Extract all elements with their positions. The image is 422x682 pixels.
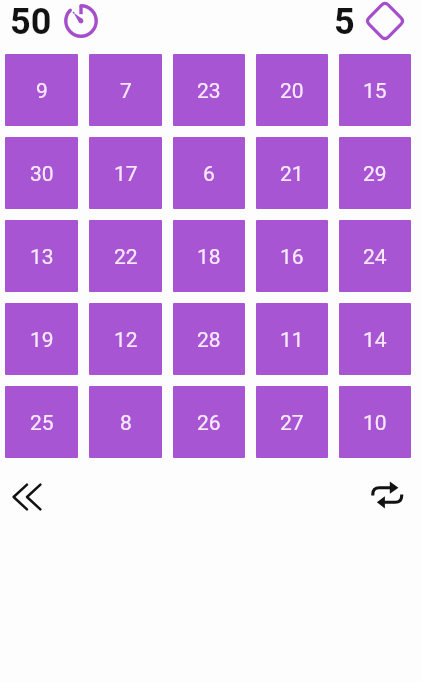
button[interactable]: 11: [256, 303, 328, 375]
other: Diamonds: [366, 2, 404, 40]
button[interactable]: Shuffle tiles: [364, 474, 408, 518]
button[interactable]: 17: [89, 137, 162, 209]
staticText: 30: [30, 162, 54, 187]
button[interactable]: 21: [256, 137, 328, 209]
staticText: 10: [363, 411, 387, 436]
button[interactable]: 23: [173, 54, 245, 126]
button[interactable]: 19: [5, 303, 78, 375]
staticText: 20: [280, 79, 304, 104]
staticText: 15: [363, 79, 387, 104]
button[interactable]: 20: [256, 54, 328, 126]
button[interactable]: 8: [89, 386, 162, 458]
button[interactable]: 29: [339, 137, 411, 209]
staticText: 5: [334, 1, 355, 43]
button[interactable]: 15: [339, 54, 411, 126]
staticText: 12: [114, 328, 138, 353]
staticText: 7: [120, 79, 132, 104]
button[interactable]: 50: [4, 0, 58, 47]
button[interactable]: 14: [339, 303, 411, 375]
other: Timer: [64, 4, 98, 38]
staticText: 28: [197, 328, 221, 353]
staticText: 17: [114, 162, 138, 187]
staticText: 16: [280, 245, 304, 270]
button[interactable]: 6: [173, 137, 245, 209]
staticText: 8: [120, 411, 132, 436]
button[interactable]: 7: [89, 54, 162, 126]
staticText: 14: [363, 328, 387, 353]
staticText: 25: [30, 411, 54, 436]
staticText: 9: [36, 79, 48, 104]
staticText: 22: [114, 245, 138, 270]
button[interactable]: 24: [339, 220, 411, 292]
staticText: 13: [30, 245, 54, 270]
button[interactable]: 30: [5, 137, 78, 209]
staticText: 27: [280, 411, 304, 436]
button[interactable]: 27: [256, 386, 328, 458]
staticText: 19: [30, 328, 54, 353]
staticText: 26: [197, 411, 221, 436]
button[interactable]: 28: [173, 303, 245, 375]
staticText: 29: [363, 162, 387, 187]
button[interactable]: 18: [173, 220, 245, 292]
button[interactable]: 5: [328, 0, 361, 47]
staticText: 23: [197, 79, 221, 104]
staticText: 21: [280, 162, 304, 187]
staticText: 24: [363, 245, 387, 270]
button[interactable]: 26: [173, 386, 245, 458]
button[interactable]: 22: [89, 220, 162, 292]
staticText: 11: [280, 328, 304, 353]
button[interactable]: 25: [5, 386, 78, 458]
button[interactable]: 13: [5, 220, 78, 292]
button[interactable]: 16: [256, 220, 328, 292]
button[interactable]: Undo move: [6, 476, 48, 518]
staticText: 18: [197, 245, 221, 270]
button[interactable]: 10: [339, 386, 411, 458]
staticText: 50: [10, 1, 52, 43]
button[interactable]: 12: [89, 303, 162, 375]
button[interactable]: 9: [5, 54, 78, 126]
staticText: 6: [203, 162, 215, 187]
